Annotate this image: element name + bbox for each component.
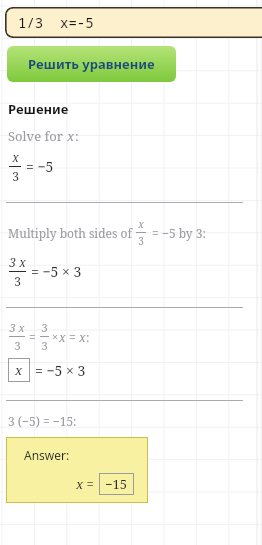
staticText: :	[75, 127, 79, 145]
staticText: Решение	[8, 100, 69, 118]
staticText: :	[86, 329, 90, 345]
staticText: =	[69, 329, 79, 345]
button[interactable]: 1/3 x=-5	[5, 7, 262, 38]
staticText: −15	[105, 475, 128, 493]
staticText: = −5 × 3	[35, 361, 86, 380]
staticText: 3	[41, 320, 48, 335]
staticText: 3	[41, 338, 48, 353]
staticText: x	[59, 329, 66, 345]
staticText: = −5 by 3:	[149, 225, 206, 241]
staticText: x	[138, 217, 144, 231]
staticText: x	[67, 127, 75, 145]
staticText: Answer:	[24, 447, 70, 463]
staticText: Solve for	[8, 127, 67, 145]
staticText: x =	[76, 475, 94, 493]
staticText: 1/3 x=-5	[18, 13, 94, 32]
staticText: = −5	[26, 157, 54, 176]
staticText: x	[12, 149, 19, 165]
staticText: 3	[138, 234, 144, 248]
staticText: Multiply both sides of	[8, 225, 135, 241]
staticText: 3 (−5) = −15:	[8, 413, 77, 429]
staticText: 3 x	[9, 320, 25, 335]
staticText: Решить уравнение	[28, 55, 155, 73]
staticText: ×	[52, 329, 59, 344]
staticText: 3 x	[9, 254, 26, 270]
staticText: 3	[14, 338, 21, 353]
staticText: x	[15, 361, 23, 379]
staticText: 3	[12, 168, 19, 184]
staticText: 3	[14, 273, 21, 289]
staticText: =	[29, 329, 36, 345]
staticText: x	[79, 329, 86, 345]
button[interactable]: Решить уравнение	[7, 46, 176, 82]
staticText: = −5 × 3	[31, 262, 82, 281]
